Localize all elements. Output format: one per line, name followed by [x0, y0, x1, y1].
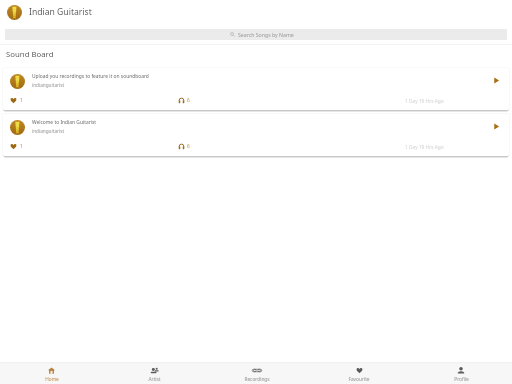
- staticText: Artist: [148, 376, 161, 383]
- staticText: Upload you recordings to feature it on s…: [32, 73, 149, 80]
- staticText: indianguitarist: [32, 128, 65, 134]
- button[interactable]: Play: [490, 74, 503, 87]
- button[interactable]: Indian Guitarist: [0, 0, 512, 24]
- button[interactable]: Favourite: [308, 362, 410, 384]
- staticText: Search Songs by Name: [238, 31, 294, 38]
- button[interactable]: Recordings: [206, 362, 308, 384]
- staticText: Home: [45, 376, 59, 383]
- staticText: 1: [20, 97, 23, 104]
- staticText: indianguitarist: [32, 82, 65, 88]
- staticText: Indian Guitarist: [29, 6, 92, 18]
- button[interactable]: Profile: [410, 362, 512, 384]
- staticText: 6: [187, 143, 190, 150]
- staticText: 1 Day 19 Hrs Ago: [405, 98, 444, 105]
- staticText: Profile: [454, 376, 469, 383]
- staticText: 1 Day 19 Hrs Ago: [405, 144, 444, 151]
- button[interactable]: Welcome to Indian Guitarist: [3, 113, 509, 156]
- button[interactable]: Artist: [103, 362, 206, 384]
- staticText: 6: [187, 97, 190, 104]
- button[interactable]: Upload you recordings to feature it on s…: [3, 67, 509, 110]
- staticText: Sound Board: [6, 49, 54, 60]
- button[interactable]: Play: [490, 120, 503, 133]
- staticText: Welcome to Indian Guitarist: [32, 119, 97, 126]
- staticText: Favourite: [348, 376, 370, 383]
- button[interactable]: Home: [0, 362, 103, 384]
- button[interactable]: Search Songs by Name: [5, 29, 507, 40]
- staticText: 1: [20, 143, 23, 150]
- staticText: Recordings: [244, 376, 270, 383]
